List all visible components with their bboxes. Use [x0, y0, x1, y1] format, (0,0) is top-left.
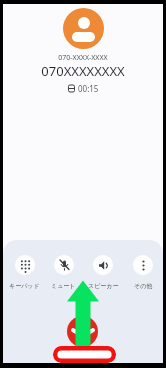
staticText: 00:15	[78, 83, 99, 93]
button[interactable]: スピーカー	[83, 255, 123, 290]
button[interactable]: その他	[123, 255, 163, 290]
staticText: 070XXXXXXXX	[3, 62, 163, 80]
staticText: キーパッド	[9, 282, 40, 290]
staticText: スピーカー	[88, 282, 119, 290]
button[interactable]: ミュート	[44, 255, 83, 290]
staticText: ミュート	[51, 282, 76, 290]
button[interactable]: キーパッド	[5, 255, 44, 290]
staticText: 070-XXXX-XXXX	[3, 53, 163, 63]
button[interactable]	[67, 316, 98, 347]
staticText: その他	[134, 282, 153, 290]
